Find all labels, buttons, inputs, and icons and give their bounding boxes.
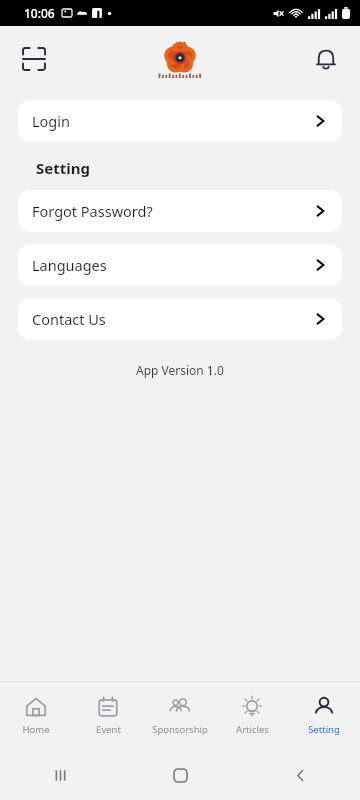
button[interactable]: Sponsorship [144,690,216,742]
button[interactable]: Recent apps [45,760,75,790]
staticText: App Version 1.0 [136,362,224,378]
staticText: Setting [308,723,340,736]
button[interactable]: Home [165,760,195,790]
staticText: Articles [236,723,269,736]
button[interactable]: Scan QR code [14,39,54,79]
button[interactable]: Back [285,760,315,790]
staticText: 10:06 [24,5,55,21]
staticText: Home [22,723,50,736]
button[interactable]: Languages [18,244,342,286]
staticText: Login [32,111,70,131]
button[interactable]: Login [18,100,342,142]
staticText: Languages [32,255,107,275]
button[interactable]: Notifications [306,39,346,79]
button[interactable]: Home [0,690,72,742]
button[interactable]: Event [72,690,144,742]
staticText: Contact Us [32,309,106,329]
button[interactable]: Contact Us [18,298,342,340]
staticText: Setting [36,158,90,178]
button[interactable]: Forgot Password? [18,190,342,232]
staticText: Sponsorship [152,723,208,736]
staticText: Forgot Password? [32,201,153,221]
button[interactable]: Articles [216,690,288,742]
button[interactable]: Setting [288,690,360,742]
staticText: Event [96,723,121,736]
